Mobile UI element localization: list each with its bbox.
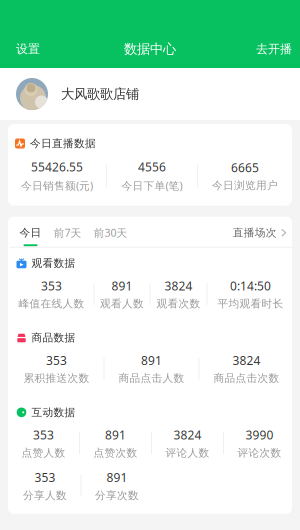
staticText: 前7天: [53, 226, 81, 240]
staticText: 互动数据: [31, 406, 75, 419]
button[interactable]: 大风歌歌店铺: [0, 68, 300, 120]
staticText: 分享次数: [95, 489, 139, 502]
staticText: 商品点击次数: [213, 372, 279, 385]
staticText: 353: [41, 278, 62, 294]
staticText: 评论人数: [165, 446, 209, 459]
staticText: 3824: [164, 278, 192, 294]
staticText: 891: [141, 352, 162, 368]
staticText: 商品点击人数: [118, 372, 184, 385]
staticText: 评论次数: [237, 446, 281, 459]
staticText: 商品数据: [31, 331, 75, 344]
staticText: 0:14:50: [230, 278, 271, 294]
staticText: 4556: [138, 159, 166, 175]
button[interactable]: 直播场次: [233, 226, 286, 246]
staticText: 今日直播数据: [30, 137, 96, 150]
staticText: 去开播: [256, 42, 292, 56]
button[interactable]: 设置: [0, 36, 50, 62]
staticText: 353: [46, 352, 67, 368]
staticText: 观看人数: [100, 297, 144, 310]
staticText: 353: [33, 427, 54, 443]
staticText: 891: [105, 427, 126, 443]
staticText: 891: [111, 278, 132, 294]
staticText: 3824: [173, 427, 201, 443]
button[interactable]: 去开播: [246, 36, 300, 62]
staticText: 前30天: [93, 226, 127, 240]
staticText: 峰值在线人数: [18, 297, 84, 310]
staticText: 今日下单(笔): [121, 178, 182, 193]
staticText: 3990: [245, 427, 273, 443]
staticText: 891: [106, 469, 127, 485]
staticText: 今日浏览用户: [212, 179, 278, 192]
staticText: 今日销售额(元): [21, 178, 93, 193]
staticText: 6665: [231, 159, 259, 175]
staticText: 大风歌歌店铺: [61, 86, 139, 102]
staticText: 今日: [19, 226, 41, 239]
staticText: 3824: [232, 352, 260, 368]
staticText: 累积推送次数: [23, 372, 89, 385]
staticText: 观看次数: [156, 297, 200, 310]
staticText: 数据中心: [124, 41, 176, 57]
staticText: 55426.55: [31, 159, 83, 175]
staticText: 观看数据: [31, 257, 75, 270]
staticText: 353: [34, 469, 55, 485]
staticText: 分享人数: [23, 489, 67, 502]
staticText: 点赞人数: [21, 446, 65, 459]
staticText: 点赞次数: [93, 446, 137, 459]
staticText: 直播场次: [233, 226, 277, 239]
staticText: 平均观看时长: [217, 297, 283, 310]
staticText: 设置: [16, 42, 40, 56]
